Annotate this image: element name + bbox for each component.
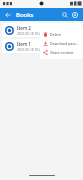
button[interactable]: Delete: [40, 30, 83, 39]
button[interactable]: Download password as PDF: [40, 39, 83, 48]
staticText: Share content: [50, 50, 74, 55]
staticText: 2021-05-18 10:21:07: [17, 48, 48, 52]
button[interactable]: Account: [70, 10, 80, 20]
staticText: Item 2: [17, 25, 31, 31]
staticText: Delete: [50, 32, 61, 37]
staticText: 2021-05-18 10:24:51: [17, 32, 48, 36]
staticText: Item 1: [17, 41, 31, 47]
button[interactable]: More options: [70, 42, 78, 50]
button[interactable]: Item 2: [2, 23, 81, 37]
button[interactable]: Back: [3, 10, 13, 20]
button[interactable]: Share content: [40, 48, 83, 57]
button[interactable]: Search: [60, 10, 70, 20]
button[interactable]: Item 1: [2, 39, 81, 53]
staticText: Books: [16, 11, 60, 19]
staticText: Download password as PDF: [50, 41, 80, 46]
